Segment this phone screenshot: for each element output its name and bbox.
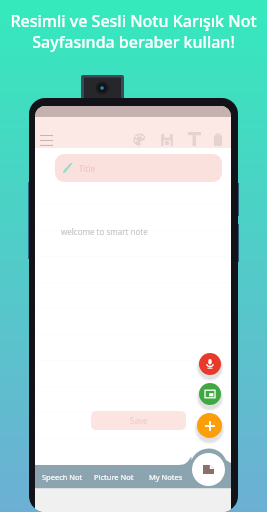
staticText: Save [130, 415, 148, 426]
button[interactable]: New note [192, 453, 225, 486]
button[interactable]: Speech Not [36, 465, 88, 488]
button[interactable]: Voice note [199, 353, 221, 375]
button[interactable]: Title [55, 154, 222, 182]
button[interactable]: Delete [208, 129, 228, 150]
button[interactable]: Save [91, 411, 186, 430]
staticText: Title [79, 163, 95, 174]
button[interactable]: Save note [156, 130, 178, 150]
staticText: Resimli ve Sesli Notu Karışık Not Sayfas… [0, 10, 267, 53]
button[interactable]: Picture note [199, 383, 221, 405]
staticText: My Notes [149, 472, 183, 482]
button[interactable]: My Notes [140, 465, 192, 488]
button[interactable]: Menu [36, 130, 57, 151]
button[interactable]: Picture Not [88, 465, 140, 488]
button[interactable]: Add note [197, 413, 222, 438]
staticText: Speech Not [42, 472, 83, 482]
button[interactable]: Text format [184, 128, 205, 150]
staticText: Picture Not [94, 472, 134, 482]
button[interactable]: Palette [128, 128, 151, 151]
staticText: welcome to smart note [61, 226, 148, 237]
